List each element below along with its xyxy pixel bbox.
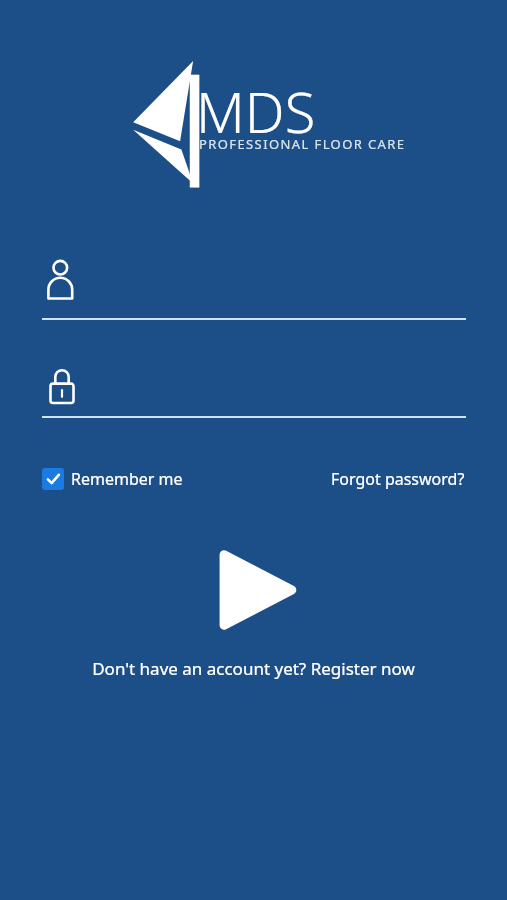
staticText: MDS xyxy=(196,73,316,149)
button[interactable]: Log in xyxy=(206,542,302,638)
staticText: PROFESSIONAL FLOOR CARE xyxy=(199,135,406,153)
button[interactable]: Remember me xyxy=(42,468,183,490)
staticText: Don't have an account yet? Register now xyxy=(92,657,415,680)
other: Password xyxy=(46,366,78,408)
button[interactable]: Username xyxy=(0,252,507,324)
staticText: Forgot password? xyxy=(331,468,465,490)
button[interactable]: Don't have an account yet? Register now xyxy=(82,653,425,684)
staticText: Remember me xyxy=(71,468,183,490)
other: Username xyxy=(45,258,79,302)
button[interactable]: Forgot password? xyxy=(331,468,465,490)
button[interactable]: Password xyxy=(0,360,507,422)
